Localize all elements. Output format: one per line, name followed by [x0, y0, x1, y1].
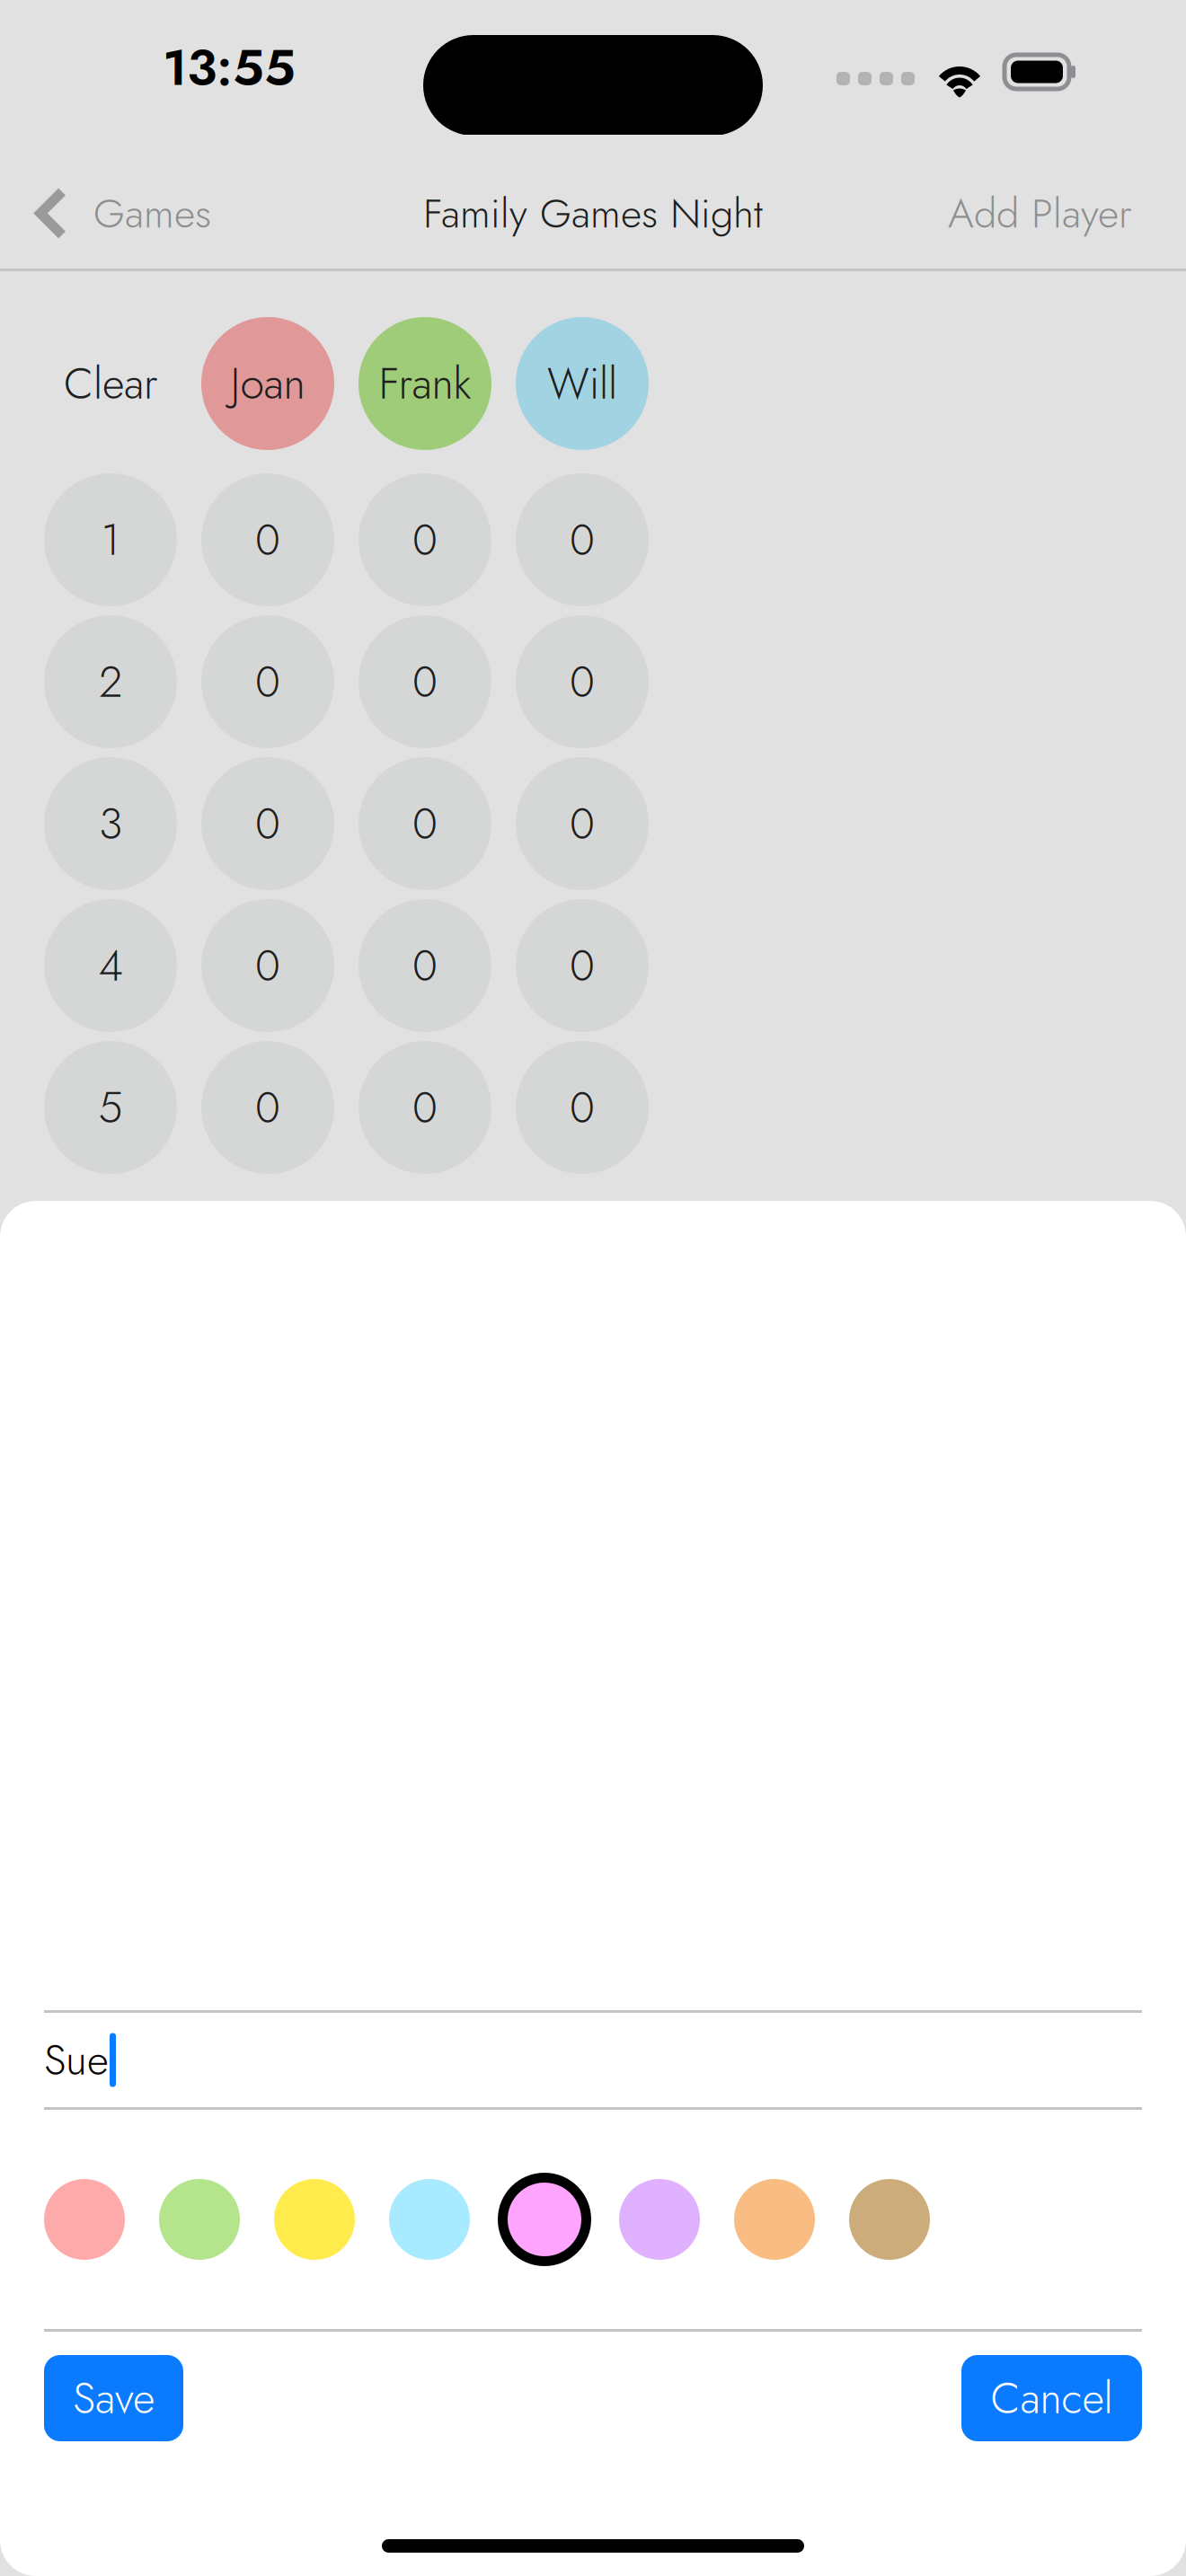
- staticText: 0: [570, 934, 595, 997]
- staticText: 2: [99, 651, 122, 713]
- staticText: 0: [255, 651, 280, 713]
- staticText: 3: [99, 792, 122, 855]
- staticText: 0: [570, 792, 595, 855]
- staticText: 0: [412, 934, 438, 997]
- button[interactable]: 0: [201, 757, 334, 890]
- staticText: Family Games Night: [423, 184, 763, 243]
- button[interactable]: Add Player: [948, 166, 1186, 261]
- staticText: 0: [570, 651, 595, 713]
- staticText: Will: [547, 352, 617, 415]
- staticText: Save: [73, 2367, 155, 2429]
- button[interactable]: [843, 2173, 936, 2266]
- button[interactable]: 0: [516, 757, 649, 890]
- button[interactable]: [498, 2173, 591, 2266]
- staticText: Add Player: [948, 184, 1132, 243]
- button[interactable]: 0: [201, 1041, 334, 1174]
- button[interactable]: Will: [516, 317, 649, 450]
- staticText: 0: [412, 509, 438, 571]
- staticText: 0: [570, 509, 595, 571]
- button[interactable]: [38, 2173, 131, 2266]
- button[interactable]: Frank: [358, 317, 491, 450]
- button[interactable]: 0: [358, 615, 491, 748]
- staticText: Clear: [64, 352, 157, 415]
- button[interactable]: 0: [516, 1041, 649, 1174]
- staticText: 5: [98, 1076, 123, 1139]
- button[interactable]: 0: [201, 473, 334, 606]
- staticText: Games: [93, 184, 211, 243]
- button[interactable]: [153, 2173, 246, 2266]
- button[interactable]: 0: [358, 1041, 491, 1174]
- staticText: 0: [412, 1076, 438, 1139]
- button[interactable]: 3: [44, 757, 177, 890]
- staticText: 0: [255, 792, 280, 855]
- staticText: 0: [412, 651, 438, 713]
- staticText: 1: [101, 509, 120, 571]
- staticText: Joan: [230, 352, 305, 415]
- button[interactable]: 0: [516, 899, 649, 1032]
- button[interactable]: [383, 2173, 476, 2266]
- button[interactable]: 2: [44, 615, 177, 748]
- button[interactable]: 0: [358, 473, 491, 606]
- staticText: 4: [98, 934, 123, 997]
- button[interactable]: 1: [44, 473, 177, 606]
- button[interactable]: 0: [516, 615, 649, 748]
- button[interactable]: [728, 2173, 821, 2266]
- button[interactable]: 5: [44, 1041, 177, 1174]
- button[interactable]: 0: [201, 899, 334, 1032]
- button[interactable]: 0: [201, 615, 334, 748]
- button[interactable]: 4: [44, 899, 177, 1032]
- button[interactable]: [268, 2173, 361, 2266]
- staticText: 0: [412, 792, 438, 855]
- staticText: 13:55: [163, 31, 296, 104]
- staticText: 0: [255, 509, 280, 571]
- button[interactable]: 0: [516, 473, 649, 606]
- staticText: Frank: [379, 352, 471, 415]
- staticText: 0: [255, 1076, 280, 1139]
- button[interactable]: Games: [0, 166, 211, 261]
- button[interactable]: Joan: [201, 317, 334, 450]
- button[interactable]: Cancel: [961, 2355, 1142, 2441]
- button[interactable]: 0: [358, 757, 491, 890]
- staticText: Sue: [44, 2030, 109, 2090]
- staticText: 0: [255, 934, 280, 997]
- button[interactable]: 0: [358, 899, 491, 1032]
- staticText: 0: [570, 1076, 595, 1139]
- button[interactable]: [613, 2173, 706, 2266]
- button[interactable]: Save: [44, 2355, 183, 2441]
- staticText: Cancel: [991, 2367, 1113, 2429]
